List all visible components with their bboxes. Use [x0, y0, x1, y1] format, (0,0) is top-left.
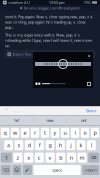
button[interactable]: h	[56, 140, 65, 150]
staticText: c	[38, 154, 41, 161]
staticText: p	[93, 129, 96, 136]
button[interactable]: p	[91, 128, 99, 138]
button[interactable]: y	[51, 128, 59, 138]
button[interactable]: Delete	[88, 153, 99, 163]
button[interactable]: k	[77, 140, 85, 150]
button[interactable]: Next field	[11, 107, 20, 115]
button[interactable]: Done	[84, 107, 98, 115]
button[interactable]: Mute	[35, 82, 40, 85]
button[interactable]: n	[67, 153, 76, 163]
staticText: 13:53 pm	[49, 0, 65, 5]
staticText: f	[39, 142, 41, 149]
button[interactable]: return	[82, 165, 99, 175]
staticText: not	[81, 117, 86, 123]
staticText: ⌃	[4, 108, 8, 114]
staticText: x	[27, 154, 30, 161]
button[interactable]: m	[77, 153, 87, 163]
button[interactable]: o	[81, 128, 89, 138]
staticText: now	[46, 117, 53, 123]
staticText: d	[28, 142, 31, 149]
button[interactable]: s	[15, 140, 23, 150]
button[interactable]: not	[67, 115, 100, 125]
staticText: “no”	[13, 117, 19, 123]
button[interactable]: z	[13, 153, 22, 163]
staticText: v	[48, 154, 51, 161]
button[interactable]: “no”	[0, 115, 33, 125]
staticText: ⌫	[91, 155, 97, 160]
button[interactable]: Attach files	[5, 51, 95, 58]
staticText: ✕	[87, 54, 90, 58]
staticText: n	[70, 154, 73, 161]
staticText: ☺	[14, 167, 20, 173]
staticText: s	[17, 142, 20, 149]
button[interactable]: b	[56, 153, 65, 163]
staticText: y	[53, 129, 56, 136]
staticText: j	[70, 142, 71, 149]
button[interactable]: t	[41, 128, 49, 138]
button[interactable]: space	[34, 165, 81, 175]
staticText: l	[91, 142, 92, 149]
staticText: 🎤	[25, 168, 30, 172]
button[interactable]: u	[61, 128, 69, 138]
staticText: 70%	[83, 0, 90, 5]
staticText: g	[48, 142, 51, 149]
staticText: exed it. Pop again. Now x, clear typing …	[5, 14, 92, 30]
staticText: Attach files	[13, 51, 32, 57]
button[interactable]: j	[66, 140, 75, 150]
button[interactable]: i	[71, 128, 79, 138]
button[interactable]: Full screen	[86, 81, 92, 87]
button[interactable]: Dictate	[23, 165, 32, 175]
staticText: k	[80, 142, 83, 149]
button[interactable]: now	[33, 115, 67, 125]
button[interactable]: Address bar	[0, 5, 100, 11]
staticText: z	[16, 154, 19, 161]
staticText: t	[44, 129, 46, 136]
button[interactable]: Close video	[86, 53, 92, 59]
staticText: i	[74, 129, 75, 136]
staticText: w	[13, 129, 17, 136]
button[interactable]: c	[35, 153, 44, 163]
button[interactable]: Numbers	[1, 165, 11, 175]
staticText: o	[83, 129, 86, 136]
staticText: h	[59, 142, 62, 149]
staticText: return	[85, 167, 96, 173]
staticText: forums.league.com/thread.posts	[24, 5, 80, 11]
staticText: ⇧	[4, 155, 8, 161]
staticText: space	[52, 167, 62, 173]
button[interactable]: f	[35, 140, 44, 150]
staticText: e	[23, 129, 26, 136]
staticText: q	[3, 129, 6, 136]
button[interactable]: Shift	[1, 153, 12, 163]
button[interactable]: q	[1, 128, 9, 138]
button[interactable]: v	[45, 153, 55, 163]
button[interactable]: d	[25, 140, 34, 150]
staticText: u	[63, 129, 66, 136]
staticText: b	[59, 154, 62, 161]
staticText: This is my experience with it. Now, pop,…	[5, 32, 92, 48]
staticText: m	[80, 154, 85, 161]
button[interactable]: a	[4, 140, 13, 150]
staticText: vodafone AU	[8, 0, 30, 5]
staticText: a	[7, 142, 10, 149]
staticText: 123	[3, 167, 9, 173]
staticText: r	[34, 129, 36, 136]
button[interactable]: r	[31, 128, 39, 138]
button[interactable]: x	[24, 153, 33, 163]
button[interactable]: w	[11, 128, 19, 138]
button[interactable]: Previous field	[2, 107, 11, 115]
staticText: Done	[86, 108, 96, 113]
button[interactable]: g	[46, 140, 54, 150]
button[interactable]: l	[87, 140, 96, 150]
button[interactable]: Emoji	[12, 165, 21, 175]
staticText: ⌄	[13, 108, 17, 114]
button[interactable]: e	[21, 128, 29, 138]
